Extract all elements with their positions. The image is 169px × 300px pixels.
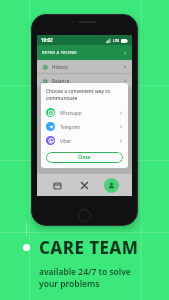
staticText: Whatsapp <box>60 110 82 116</box>
staticText: Viber <box>60 138 72 144</box>
button[interactable]: Telegram <box>46 121 123 132</box>
staticText: Telegram <box>60 124 81 130</box>
button[interactable]: Whatsapp <box>46 107 123 118</box>
staticText: REFER A FRIEND <box>42 50 77 56</box>
staticText: Balance <box>52 78 70 84</box>
staticText: History <box>52 64 68 70</box>
staticText: CARE TEAM <box>39 236 139 259</box>
button[interactable]: History <box>37 60 132 73</box>
staticText: Close <box>78 154 91 161</box>
staticText: available 24/7 to solve your problems <box>39 266 131 290</box>
button[interactable]: Transfer <box>77 178 91 192</box>
button[interactable]: Calendar <box>50 178 64 192</box>
button[interactable]: Balance <box>37 74 132 87</box>
button[interactable]: Profile <box>104 178 119 193</box>
button[interactable]: Close <box>46 152 123 163</box>
staticText: 19:02 <box>41 37 53 43</box>
staticText: Choose a convenient way to communicate <box>46 88 111 102</box>
button[interactable]: REFER A FRIEND <box>37 45 132 60</box>
button[interactable]: Viber <box>46 135 123 146</box>
staticText: LTE <box>113 38 119 43</box>
